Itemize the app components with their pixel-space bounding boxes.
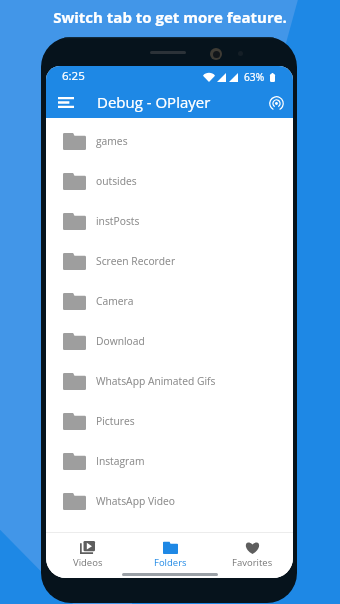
button[interactable]: Camera (46, 281, 293, 321)
button[interactable]: Download (46, 321, 293, 361)
staticText: games (96, 134, 128, 148)
staticText: outsides (96, 174, 137, 188)
button[interactable]: Favorites (211, 533, 293, 570)
staticText: Favorites (232, 556, 273, 569)
button[interactable]: outsides (46, 161, 293, 201)
staticText: Videos (73, 556, 103, 569)
staticText: Switch tab to get more feature. (0, 7, 340, 27)
staticText: Instagram (96, 454, 145, 468)
staticText: Download (96, 334, 145, 348)
staticText: 6:25 (62, 68, 85, 84)
staticText: WhatsApp Animated Gifs (96, 374, 216, 388)
button[interactable]: Videos (46, 533, 129, 570)
button[interactable]: Screen Recorder (46, 241, 293, 281)
staticText: instPosts (96, 214, 140, 228)
staticText: Folders (154, 556, 187, 569)
button[interactable]: instPosts (46, 201, 293, 241)
button[interactable]: Folders (129, 533, 211, 570)
button[interactable]: Pictures (46, 401, 293, 441)
staticText: Camera (96, 294, 134, 308)
button[interactable]: Open navigation menu (53, 89, 79, 115)
button[interactable]: Instagram (46, 441, 293, 481)
staticText: WhatsApp Video (96, 494, 175, 508)
staticText: Debug - OPlayer (97, 92, 211, 112)
staticText: Screen Recorder (96, 254, 176, 268)
staticText: Pictures (96, 414, 135, 428)
button[interactable]: Cast to device (264, 91, 288, 115)
button[interactable]: WhatsApp Video (46, 481, 293, 521)
button[interactable]: WhatsApp Animated Gifs (46, 361, 293, 401)
staticText: 63% (244, 70, 265, 84)
button[interactable]: games (46, 121, 293, 161)
